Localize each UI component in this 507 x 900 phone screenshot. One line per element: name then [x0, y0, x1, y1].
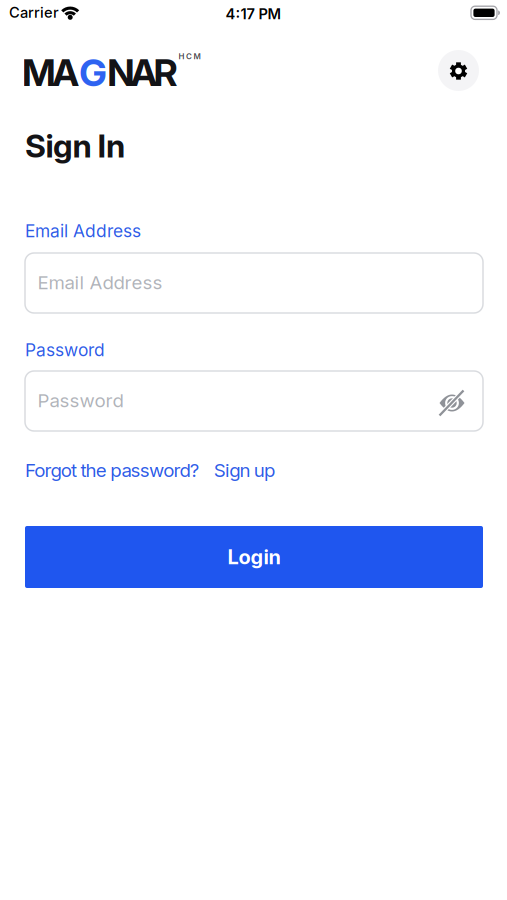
staticText: Email Address — [37, 271, 162, 294]
staticText: NAR — [107, 50, 178, 95]
button[interactable] — [438, 50, 479, 91]
staticText: Forgot the password? — [25, 459, 200, 482]
staticText: G — [79, 50, 107, 95]
staticText: MA — [22, 50, 79, 95]
staticText: 4:17 PM — [225, 5, 281, 23]
staticText: Password — [37, 389, 123, 412]
staticText: Sign up — [214, 459, 275, 482]
staticText: Password — [25, 339, 105, 360]
staticText: Email Address — [25, 220, 141, 241]
button[interactable]: Forgot the password? — [25, 459, 200, 482]
staticText: Login — [227, 545, 280, 569]
button[interactable] — [435, 385, 469, 419]
staticText: Carrier — [9, 3, 59, 21]
button[interactable]: Sign up — [214, 459, 275, 482]
staticText: HCM — [179, 51, 201, 61]
button[interactable]: Login — [25, 526, 483, 588]
staticText: Sign In — [25, 126, 125, 165]
button[interactable]: Password — [25, 371, 483, 431]
button[interactable]: Email Address — [25, 253, 483, 313]
